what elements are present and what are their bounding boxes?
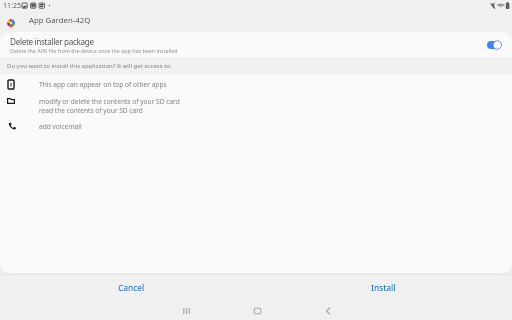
staticText: Delete installer package — [10, 36, 94, 47]
staticText: Do you want to install this application?… — [7, 62, 172, 70]
staticText: Cancel — [118, 282, 145, 293]
button[interactable]: Cancel — [112, 277, 151, 298]
button[interactable]: Delete installer package toggle — [487, 40, 501, 50]
staticText: Install — [371, 282, 396, 293]
staticText: 11:25 — [3, 1, 21, 11]
staticText: App Garden-42Q — [29, 15, 91, 26]
staticText: add voicemail — [39, 122, 82, 131]
button[interactable]: Delete installer package — [0, 32, 512, 57]
button[interactable]: Back — [318, 301, 338, 320]
staticText: modify or delete the contents of your SD… — [39, 97, 180, 115]
staticText: This app can appear on top of other apps — [39, 80, 167, 89]
staticText: Delete the APK file from the device once… — [10, 47, 178, 54]
button[interactable]: Home — [247, 301, 267, 320]
button[interactable]: Recents — [176, 301, 196, 320]
button[interactable]: Install — [365, 277, 402, 298]
